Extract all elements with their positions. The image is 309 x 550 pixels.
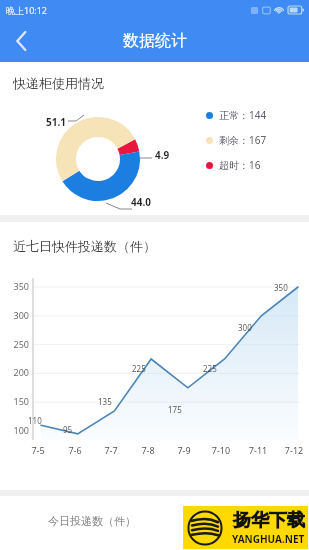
staticText: 100 xyxy=(3,424,29,436)
staticText: 200 xyxy=(3,366,29,378)
staticText: 7-12 xyxy=(281,444,307,456)
staticText: 剩余：167 xyxy=(219,133,267,147)
staticText: 95 xyxy=(63,424,73,435)
button[interactable]: 正常：144 xyxy=(206,108,267,122)
staticText: 7-6 xyxy=(62,444,88,456)
staticText: 7-5 xyxy=(25,444,51,456)
button[interactable]: 剩余：167 xyxy=(206,133,267,147)
staticText: 7-8 xyxy=(135,444,161,456)
staticText: 近七日快件投递数（件） xyxy=(13,238,156,254)
staticText: 数据统计 xyxy=(123,31,187,51)
button[interactable]: 超时：16 xyxy=(206,158,261,172)
staticText: 4.9 xyxy=(155,148,170,162)
staticText: 51.1 xyxy=(46,115,66,129)
staticText: 晚上10:12 xyxy=(6,4,48,16)
staticText: 超时：16 xyxy=(219,158,261,172)
staticText: 300 xyxy=(238,322,252,333)
staticText: 350 xyxy=(274,282,288,293)
staticText: 7-9 xyxy=(171,444,197,456)
button[interactable] xyxy=(0,222,309,490)
staticText: 44.0 xyxy=(131,195,151,209)
staticText: 扬华下载 xyxy=(233,509,305,532)
staticText: 7-7 xyxy=(98,444,124,456)
staticText: 225 xyxy=(203,363,217,374)
staticText: 正常：144 xyxy=(219,108,267,122)
staticText: YANGHUA.NET xyxy=(232,532,305,546)
staticText: 250 xyxy=(3,338,29,350)
staticText: 135 xyxy=(98,396,112,407)
button[interactable]: Back xyxy=(0,20,42,62)
staticText: 150 xyxy=(3,395,29,407)
staticText: 300 xyxy=(3,309,29,321)
staticText: 110 xyxy=(28,415,42,426)
staticText: 175 xyxy=(168,404,182,415)
staticText: 350 xyxy=(3,280,29,292)
staticText: 7-10 xyxy=(208,444,234,456)
staticText: 快递柜使用情况 xyxy=(13,75,104,91)
staticText: 7-11 xyxy=(245,444,271,456)
staticText: 今日投递数（件） xyxy=(48,514,136,528)
staticText: 225 xyxy=(132,363,146,374)
